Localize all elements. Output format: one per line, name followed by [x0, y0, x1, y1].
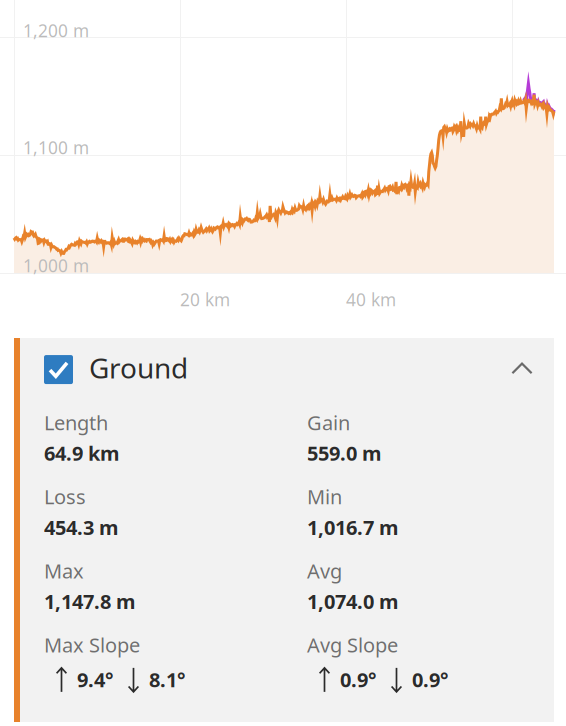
staticText: Avg	[307, 557, 342, 584]
staticText: 1,074.0 m	[307, 588, 399, 615]
staticText: Ground	[89, 349, 188, 386]
staticText: 1,000 m	[23, 254, 89, 277]
staticText: 40 km	[346, 288, 396, 311]
staticText: 1,147.8 m	[44, 588, 136, 615]
staticText: Length	[44, 409, 108, 436]
staticText: 0.9°	[340, 666, 376, 693]
staticText: Gain	[307, 409, 350, 436]
staticText: 1,016.7 m	[307, 514, 399, 540]
staticText: 64.9 km	[44, 440, 120, 466]
staticText: 20 km	[180, 288, 230, 311]
staticText: 0.9°	[412, 666, 448, 693]
staticText: 454.3 m	[44, 514, 119, 540]
button[interactable]: Ground	[20, 338, 554, 409]
staticText: 1,200 m	[23, 19, 89, 42]
staticText: Max Slope	[44, 631, 140, 658]
staticText: 8.1°	[149, 666, 185, 693]
staticText: 559.0 m	[307, 440, 382, 466]
staticText: Min	[307, 483, 342, 510]
staticText: Avg Slope	[307, 631, 398, 658]
staticText: 1,100 m	[23, 136, 89, 159]
staticText: Loss	[44, 483, 86, 510]
staticText: 9.4°	[77, 666, 113, 693]
staticText: Max	[44, 557, 84, 584]
